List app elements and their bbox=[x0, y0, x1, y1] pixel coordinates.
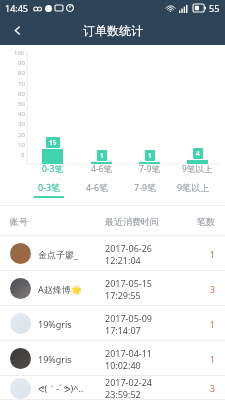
staticText: 1 bbox=[189, 318, 215, 330]
button[interactable]: 0-3笔 bbox=[24, 177, 73, 201]
staticText: 60 bbox=[18, 90, 25, 98]
button[interactable]: 9笔以上 bbox=[169, 177, 217, 201]
staticText: 2017-05-15 17:29:55 bbox=[105, 277, 189, 301]
staticText: 100 bbox=[14, 49, 25, 57]
staticText: 10 bbox=[18, 141, 25, 149]
staticText: 2017-04-11 10:02:40 bbox=[105, 347, 189, 371]
staticText: 1 bbox=[189, 248, 215, 260]
staticText: 40 bbox=[18, 110, 25, 118]
staticText: 0-3笔 bbox=[42, 163, 63, 175]
staticText: 55 bbox=[209, 2, 220, 14]
button[interactable]: 7-9笔 bbox=[121, 177, 169, 201]
staticText: 账号 bbox=[10, 216, 105, 227]
staticText: 7-9笔 bbox=[139, 163, 160, 175]
button[interactable]: Back bbox=[0, 16, 34, 45]
staticText: 14:45 bbox=[5, 2, 29, 14]
staticText: 9笔以上 bbox=[182, 163, 213, 175]
staticText: ᕙ(｀-´ ᕗ)^.. bbox=[38, 382, 105, 394]
staticText: 15 bbox=[49, 138, 57, 147]
staticText: 70 bbox=[18, 80, 25, 88]
staticText: 订单数统计 bbox=[83, 23, 143, 38]
staticText: 19%gris bbox=[38, 318, 105, 330]
staticText: 9笔以上 bbox=[177, 181, 210, 193]
staticText: 笔数 bbox=[187, 216, 215, 227]
staticText: 0 bbox=[21, 151, 25, 159]
staticText: 4-6笔 bbox=[86, 181, 109, 193]
staticText: A赵烽博🌟 bbox=[38, 283, 105, 295]
staticText: 1 bbox=[189, 353, 215, 365]
button[interactable]: 19%gris bbox=[0, 341, 225, 376]
staticText: 4-6笔 bbox=[91, 163, 112, 175]
staticText: 2017-05-09 17:14:07 bbox=[105, 312, 189, 336]
button[interactable]: 4-6笔 bbox=[73, 177, 121, 201]
button[interactable]: A赵烽博🌟 bbox=[0, 271, 225, 306]
staticText: 3 bbox=[189, 283, 215, 295]
staticText: 0-3笔 bbox=[38, 181, 61, 193]
button[interactable]: ᕙ(｀-´ ᕗ)^.. bbox=[0, 376, 225, 400]
staticText: 2017-06-26 12:21:04 bbox=[105, 242, 189, 266]
button[interactable]: 19%gris bbox=[0, 306, 225, 341]
staticText: 4 bbox=[196, 149, 200, 158]
staticText: 1 bbox=[100, 151, 104, 160]
staticText: 20 bbox=[18, 131, 25, 139]
staticText: 19%gris bbox=[38, 353, 105, 365]
button[interactable]: 金点子廖_ bbox=[0, 236, 225, 271]
staticText: 90 bbox=[18, 59, 25, 67]
staticText: 30 bbox=[18, 120, 25, 128]
staticText: 80 bbox=[18, 69, 25, 77]
staticText: 3 bbox=[189, 382, 215, 394]
staticText: 7-9笔 bbox=[134, 181, 157, 193]
staticText: 1 bbox=[148, 151, 152, 160]
staticText: 最近消费时间 bbox=[105, 216, 187, 227]
staticText: 50 bbox=[18, 100, 25, 108]
staticText: 金点子廖_ bbox=[38, 248, 105, 260]
staticText: 2017-02-24 23:59:52 bbox=[105, 376, 189, 400]
